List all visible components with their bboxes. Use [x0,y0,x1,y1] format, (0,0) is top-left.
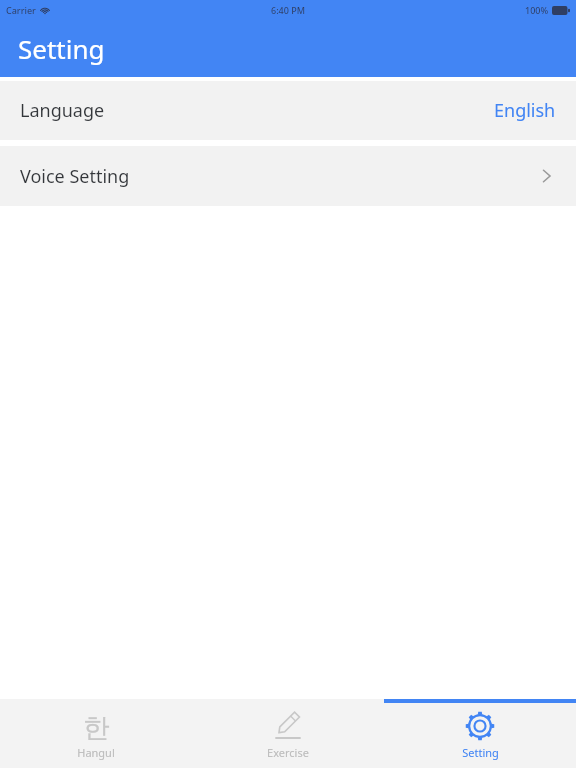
staticText: Exercise [267,745,309,760]
staticText: 100% [525,4,549,16]
staticText: 한 [83,711,110,741]
button[interactable]: Hangul [0,703,192,768]
staticText: English [494,98,556,123]
staticText: 6:40 PM [271,4,305,16]
button[interactable]: Voice Setting [0,146,576,206]
staticText: Setting [462,745,499,760]
button[interactable]: Exercise [192,703,384,768]
staticText: Voice Setting [20,164,130,189]
staticText: Language [20,98,105,123]
button[interactable]: Setting [384,703,576,768]
staticText: Setting [18,31,105,66]
staticText: Carrier [6,4,36,16]
staticText: Hangul [77,745,115,760]
button[interactable]: Language [0,81,576,140]
